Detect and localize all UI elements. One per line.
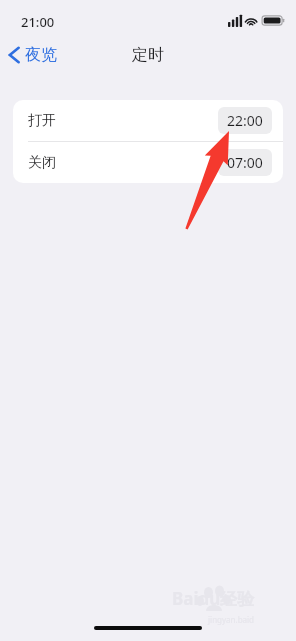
button[interactable]: 打开: [13, 100, 283, 141]
other: Home: [94, 626, 202, 630]
staticText: 07:00: [227, 153, 263, 172]
staticText: 关闭: [28, 154, 56, 172]
button[interactable]: 夜览: [4, 40, 65, 70]
staticText: 定时: [0, 45, 296, 65]
staticText: 21:00: [21, 13, 55, 31]
staticText: 22:00: [227, 111, 263, 130]
staticText: 夜览: [25, 45, 57, 65]
button[interactable]: 关闭: [13, 142, 283, 183]
staticText: jingyan.baid: [208, 614, 255, 625]
button[interactable]: 07:00: [218, 149, 272, 176]
staticText: Baidu经验: [172, 587, 255, 610]
staticText: 打开: [28, 112, 56, 130]
button[interactable]: 22:00: [218, 107, 272, 134]
